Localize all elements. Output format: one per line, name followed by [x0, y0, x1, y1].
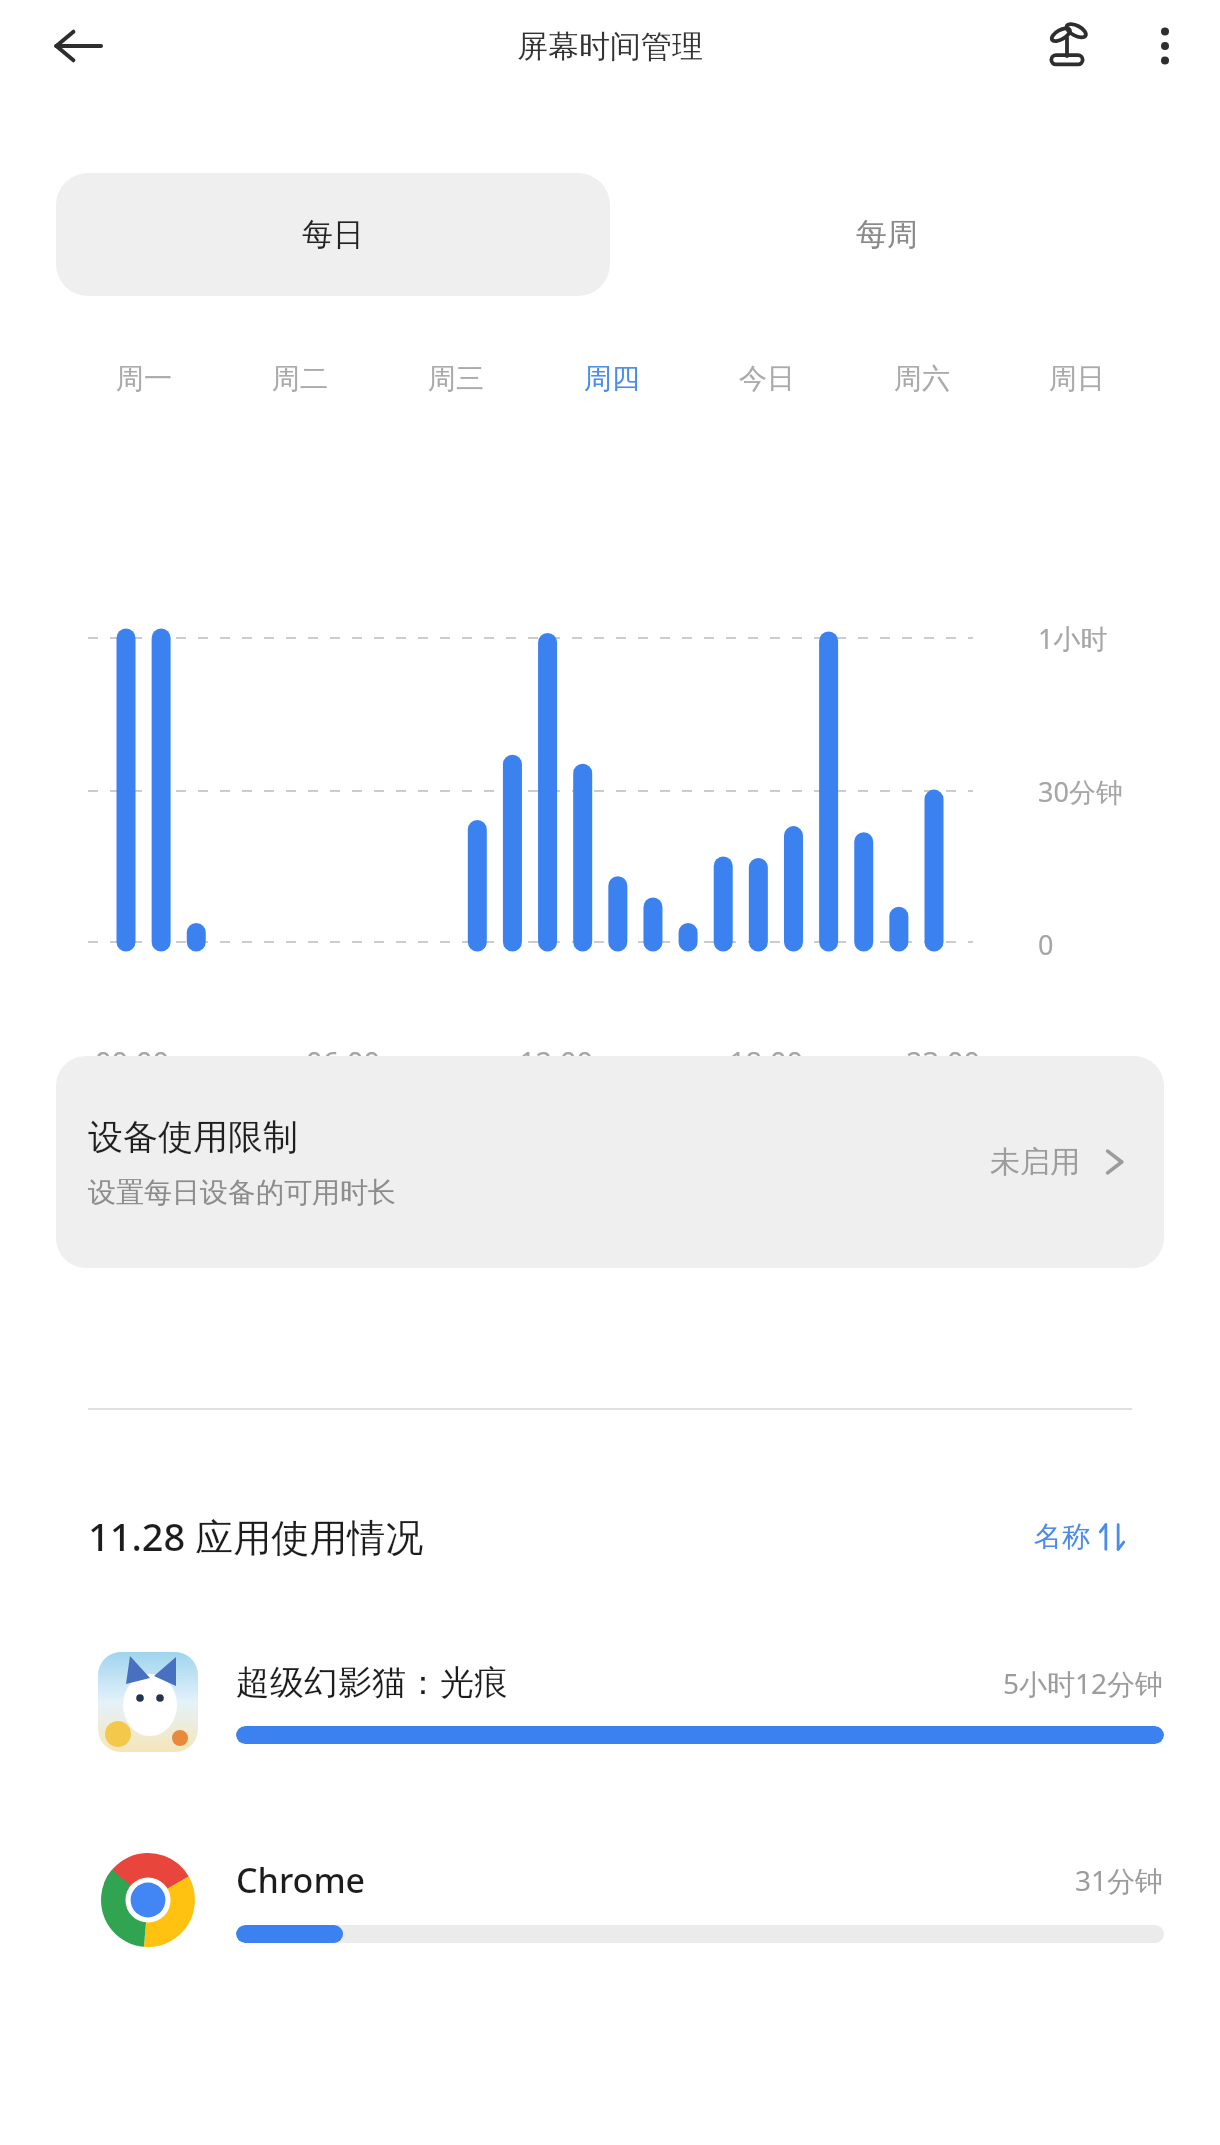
- button[interactable]: 每日: [56, 173, 610, 296]
- staticText: 今日: [739, 361, 795, 396]
- staticText: 12:00: [519, 1042, 594, 1081]
- button[interactable]: Chrome: [0, 1838, 1220, 1962]
- staticText: 周六: [894, 361, 950, 396]
- button[interactable]: 周三: [378, 350, 534, 406]
- staticText: 周二: [272, 361, 328, 396]
- staticText: 设置每日设备的可用时长: [88, 1175, 396, 1210]
- staticText: 名称: [1034, 1519, 1090, 1554]
- staticText: 0: [1038, 926, 1054, 963]
- button[interactable]: 返回: [44, 12, 112, 80]
- staticText: Chrome: [236, 1857, 366, 1903]
- staticText: 超级幻影猫：光痕: [236, 1661, 508, 1704]
- staticText: 00:00: [95, 1042, 170, 1081]
- staticText: 周一: [116, 361, 172, 396]
- staticText: 30分钟: [1038, 773, 1123, 810]
- staticText: 周日: [1049, 361, 1105, 396]
- button[interactable]: 今日: [689, 350, 844, 406]
- button[interactable]: 周四: [534, 350, 689, 406]
- staticText: 未启用: [990, 1143, 1080, 1181]
- button[interactable]: 每周: [610, 173, 1164, 296]
- staticText: 屏幕时间管理: [517, 27, 703, 66]
- staticText: 11.28 应用使用情况: [88, 1510, 424, 1562]
- staticText: 每日: [302, 215, 364, 254]
- button[interactable]: 周六: [844, 350, 999, 406]
- staticText: 23:00: [906, 1042, 981, 1081]
- button[interactable]: 超级幻影猫：光痕: [0, 1640, 1220, 1764]
- staticText: 5小时12分钟: [1003, 1664, 1164, 1702]
- button[interactable]: 周二: [222, 350, 378, 406]
- staticText: 每周: [856, 215, 918, 254]
- button[interactable]: 周一: [66, 350, 222, 406]
- staticText: 1小时: [1038, 620, 1108, 657]
- button[interactable]: 名称: [1028, 1513, 1132, 1560]
- button[interactable]: 周日: [999, 350, 1154, 406]
- button[interactable]: 设备使用限制: [56, 1056, 1164, 1268]
- staticText: 设备使用限制: [88, 1115, 298, 1159]
- staticText: 18:00: [729, 1042, 804, 1081]
- staticText: 周四: [584, 361, 640, 396]
- staticText: 31分钟: [1075, 1861, 1164, 1899]
- staticText: 06:00: [306, 1042, 381, 1081]
- staticText: 周三: [428, 361, 484, 396]
- button[interactable]: 专注模式: [1034, 13, 1100, 79]
- button[interactable]: 更多选项: [1134, 15, 1196, 77]
